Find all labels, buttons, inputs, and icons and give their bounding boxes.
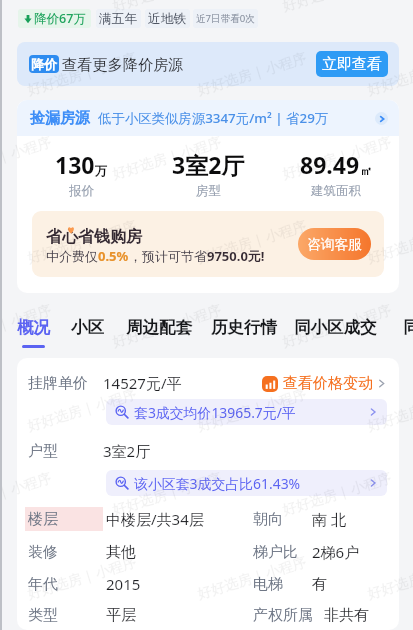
button[interactable]: 查看价格变动: [262, 374, 387, 393]
staticText: 小区: [71, 317, 104, 338]
staticText: 梯户比: [253, 543, 298, 562]
staticText: 有: [312, 575, 327, 594]
staticText: 年代: [28, 575, 58, 594]
staticText: 类型: [28, 606, 58, 625]
staticText: 近7日带看0次: [196, 12, 255, 25]
staticText: 户型: [28, 442, 103, 461]
staticText: 其他: [106, 543, 136, 562]
staticText: 2梯6户: [312, 542, 360, 562]
staticText: 2015: [106, 574, 141, 594]
staticText: 降价: [31, 56, 57, 72]
staticText: 报价: [69, 183, 94, 199]
staticText: ，预计可节省: [129, 248, 207, 264]
staticText: 挂牌单价: [28, 374, 103, 393]
staticText: 查看更多降价房源: [62, 55, 184, 74]
staticText: 套3成交均价13965.7元/平: [134, 403, 296, 422]
button[interactable]: 省心省钱购房: [32, 211, 384, 277]
staticText: 概况: [17, 317, 50, 338]
staticText: 捡漏房源: [30, 109, 90, 128]
staticText: 中介费仅: [46, 248, 98, 264]
staticText: 非共有: [324, 606, 369, 625]
staticText: 房型: [196, 183, 221, 199]
staticText: 89.49: [300, 149, 360, 180]
button[interactable]: 同: [403, 317, 413, 345]
staticText: 楼层: [28, 510, 58, 529]
button[interactable]: 捡漏房源: [17, 100, 399, 136]
button[interactable]: 历史行情: [211, 317, 277, 345]
staticText: 同小区成交: [294, 317, 377, 338]
staticText: 近地铁: [148, 11, 187, 27]
button[interactable]: 套3成交均价13965.7元/平: [106, 399, 387, 425]
button[interactable]: 周边配套: [126, 317, 192, 345]
staticText: 建筑面积: [311, 183, 361, 199]
staticText: 0.5%: [98, 247, 129, 265]
staticText: 立即查看: [322, 55, 382, 74]
staticText: 3室2厅: [103, 441, 151, 461]
button[interactable]: 概况: [17, 317, 50, 348]
staticText: 低于小区类似房源3347元/m² | 省29万: [98, 109, 329, 127]
staticText: 9750.0元!: [207, 247, 265, 265]
staticText: 14527元/平: [103, 373, 182, 393]
button[interactable]: 小区: [71, 317, 104, 345]
staticText: 3室2厅: [172, 149, 245, 180]
staticText: 130: [55, 149, 95, 180]
staticText: 电梯: [253, 575, 283, 594]
staticText: 万: [95, 163, 107, 178]
button[interactable]: 咨询客服: [298, 228, 371, 260]
staticText: 同: [403, 317, 413, 338]
staticText: 朝向: [253, 510, 283, 529]
staticText: 平层: [106, 606, 136, 625]
button[interactable]: 该小区套3成交占比61.43%: [106, 470, 387, 496]
staticText: 咨询客服: [307, 236, 362, 253]
button[interactable]: 同小区成交: [294, 317, 377, 345]
staticText: 降价67万: [34, 10, 86, 27]
staticText: 南 北: [312, 509, 346, 529]
staticText: 满五年: [99, 11, 138, 27]
staticText: 历史行情: [211, 317, 277, 338]
staticText: 查看价格变动: [283, 374, 373, 393]
staticText: 周边配套: [126, 317, 192, 338]
button[interactable]: 立即查看: [316, 51, 388, 77]
staticText: 省心省钱购房: [46, 227, 142, 247]
staticText: 中楼层/共34层: [106, 509, 204, 529]
staticText: 装修: [28, 543, 58, 562]
staticText: ㎡: [360, 163, 372, 178]
button[interactable]: 降价: [17, 42, 399, 86]
staticText: 该小区套3成交占比61.43%: [134, 474, 301, 493]
staticText: 产权所属: [253, 606, 313, 625]
